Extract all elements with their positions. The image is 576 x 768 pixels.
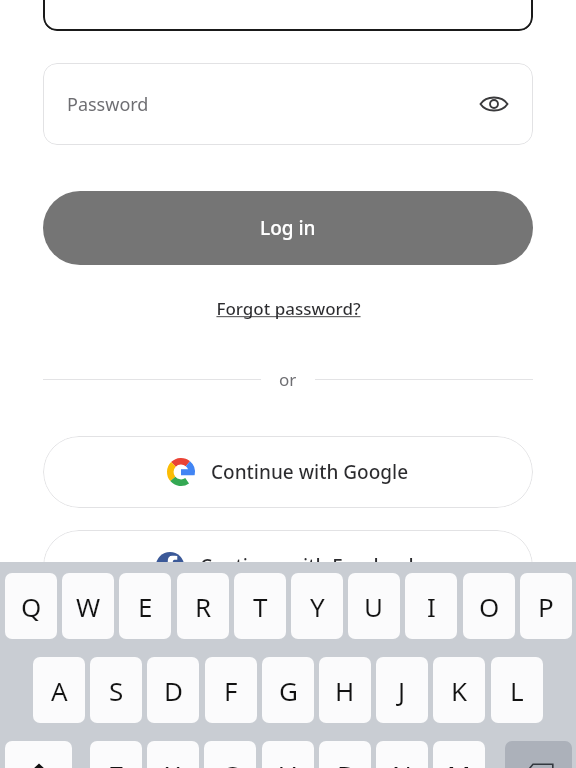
staticText: R <box>195 589 212 624</box>
button[interactable]: U <box>348 573 400 639</box>
staticText: U <box>364 589 384 624</box>
staticText: C <box>222 757 239 768</box>
staticText: Y <box>310 589 325 624</box>
button[interactable]: Continue with Facebook <box>43 530 533 602</box>
button[interactable]: B <box>319 741 371 768</box>
button[interactable]: O <box>463 573 515 639</box>
staticText: Z <box>109 757 124 768</box>
button[interactable]: N <box>376 741 428 768</box>
staticText: Q <box>21 589 42 624</box>
staticText: A <box>51 673 68 708</box>
button[interactable]: A <box>33 657 85 723</box>
staticText: F <box>224 673 238 708</box>
button[interactable]: D <box>147 657 199 723</box>
button[interactable]: K <box>433 657 485 723</box>
staticText: T <box>253 589 268 624</box>
button[interactable]: P <box>520 573 572 639</box>
staticText: K <box>451 673 468 708</box>
button[interactable]: Forgot password? <box>212 295 365 322</box>
button[interactable]: Continue with Google <box>43 436 533 508</box>
button[interactable]: R <box>177 573 229 639</box>
staticText: O <box>479 589 500 624</box>
button[interactable]: S <box>90 657 142 723</box>
staticText: G <box>279 673 298 708</box>
button[interactable]: Log in <box>43 191 533 265</box>
button[interactable]: Show password <box>477 87 511 121</box>
button[interactable]: X <box>147 741 199 768</box>
button[interactable]: G <box>262 657 314 723</box>
staticText: I <box>427 589 436 624</box>
button[interactable]: E <box>119 573 171 639</box>
staticText: V <box>280 757 296 768</box>
staticText: M <box>447 757 471 768</box>
button[interactable]: Y <box>291 573 343 639</box>
button[interactable]: Z <box>90 741 142 768</box>
button[interactable]: V <box>262 741 314 768</box>
staticText: Forgot password? <box>216 297 361 320</box>
staticText: Password <box>67 92 149 117</box>
staticText: W <box>76 589 101 624</box>
button[interactable]: L <box>491 657 543 723</box>
button[interactable]: C <box>204 741 256 768</box>
button[interactable]: Q <box>5 573 57 639</box>
button[interactable]: Backspace <box>505 741 572 768</box>
staticText: S <box>109 673 124 708</box>
button[interactable]: J <box>376 657 428 723</box>
button[interactable]: M <box>433 741 485 768</box>
staticText: Log in <box>260 215 316 241</box>
staticText: H <box>335 673 355 708</box>
staticText: Continue with Facebook <box>200 553 420 579</box>
staticText: B <box>337 757 354 768</box>
staticText: L <box>510 673 524 708</box>
button[interactable]: F <box>205 657 257 723</box>
button[interactable]: I <box>405 573 457 639</box>
button[interactable]: T <box>234 573 286 639</box>
staticText: E <box>138 589 153 624</box>
button[interactable]: Shift <box>5 741 72 768</box>
staticText: or <box>279 368 297 391</box>
button[interactable]: Password <box>43 63 533 145</box>
button[interactable] <box>43 0 533 31</box>
staticText: N <box>392 757 412 768</box>
staticText: X <box>165 757 181 768</box>
button[interactable]: W <box>62 573 114 639</box>
button[interactable]: H <box>319 657 371 723</box>
staticText: Continue with Google <box>211 459 409 485</box>
staticText: P <box>538 589 554 624</box>
staticText: J <box>398 673 406 708</box>
staticText: D <box>164 673 183 708</box>
